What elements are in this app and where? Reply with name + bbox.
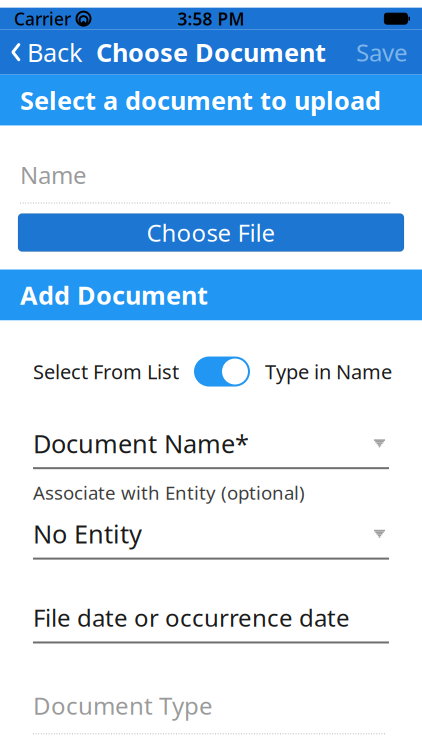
staticText: Choose Document (96, 35, 326, 69)
button[interactable]: No Entity (33, 517, 389, 560)
button[interactable]: Document Name* (33, 426, 389, 469)
button[interactable]: File date or occurrence date (33, 602, 389, 643)
staticText: Type in Name (265, 358, 392, 385)
staticText: Add Document (20, 278, 208, 312)
staticText: Name (20, 159, 87, 191)
staticText: Document Name* (33, 426, 249, 460)
button[interactable]: Save (356, 28, 422, 76)
staticText: Associate with Entity (optional) (33, 480, 305, 505)
staticText: Carrier (14, 7, 71, 30)
staticText: Document Type (33, 689, 213, 721)
button[interactable]: Choose File (18, 213, 404, 251)
staticText: File date or occurrence date (33, 602, 350, 633)
staticText: Back (27, 35, 83, 69)
button[interactable]: Back (0, 27, 83, 77)
staticText: Save (356, 36, 408, 68)
staticText: 3:58 PM (177, 7, 244, 30)
button[interactable]: Select From List or Type in Name (194, 356, 250, 386)
staticText: Select a document to upload (20, 83, 381, 117)
staticText: Choose File (146, 217, 275, 248)
staticText: Select From List (33, 358, 179, 385)
staticText: No Entity (33, 517, 142, 551)
